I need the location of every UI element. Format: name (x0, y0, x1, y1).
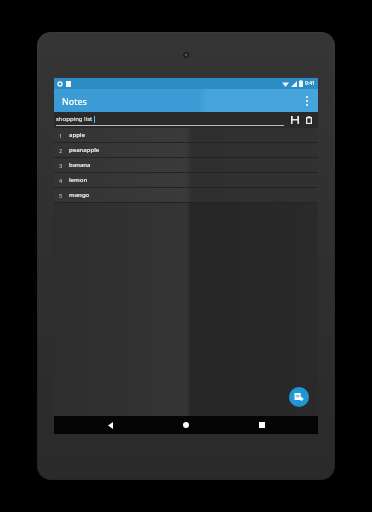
staticText: 9:41 (305, 80, 315, 87)
staticText: 2 (59, 147, 63, 154)
staticText: 4 (59, 177, 63, 184)
staticText: 3 (59, 162, 63, 169)
staticText: banana (69, 161, 91, 169)
button[interactable]: Recent apps (242, 416, 282, 434)
staticText: mango (69, 191, 90, 199)
staticText: apple (69, 131, 85, 139)
staticText: Notes (62, 95, 87, 107)
button[interactable]: 4 (54, 173, 318, 187)
button[interactable]: New note (289, 387, 309, 407)
staticText: shopping list (56, 115, 93, 123)
staticText: peanapple (69, 146, 100, 154)
button[interactable]: 2 (54, 143, 318, 157)
button[interactable]: 3 (54, 158, 318, 172)
button[interactable]: shopping list (56, 112, 284, 126)
button[interactable]: 5 (54, 188, 318, 202)
button[interactable]: Save (288, 113, 302, 127)
button[interactable]: Delete (302, 113, 316, 127)
button[interactable]: More options (296, 90, 318, 112)
staticText: 1 (59, 132, 63, 139)
staticText: lemon (69, 176, 88, 184)
button[interactable]: Home (166, 416, 206, 434)
button[interactable]: Back (90, 416, 130, 434)
button[interactable]: 1 (54, 128, 318, 142)
staticText: 5 (59, 192, 63, 199)
